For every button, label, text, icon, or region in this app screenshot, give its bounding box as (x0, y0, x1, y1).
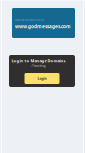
staticText: Featuring the future site for (15, 18, 44, 21)
staticText: www.godmessages.com (15, 23, 71, 30)
staticText: Login to Manage Domains (11, 58, 65, 63)
staticText: Login (37, 76, 46, 81)
staticText: / hosting (31, 63, 45, 68)
button[interactable]: Login (24, 73, 59, 84)
